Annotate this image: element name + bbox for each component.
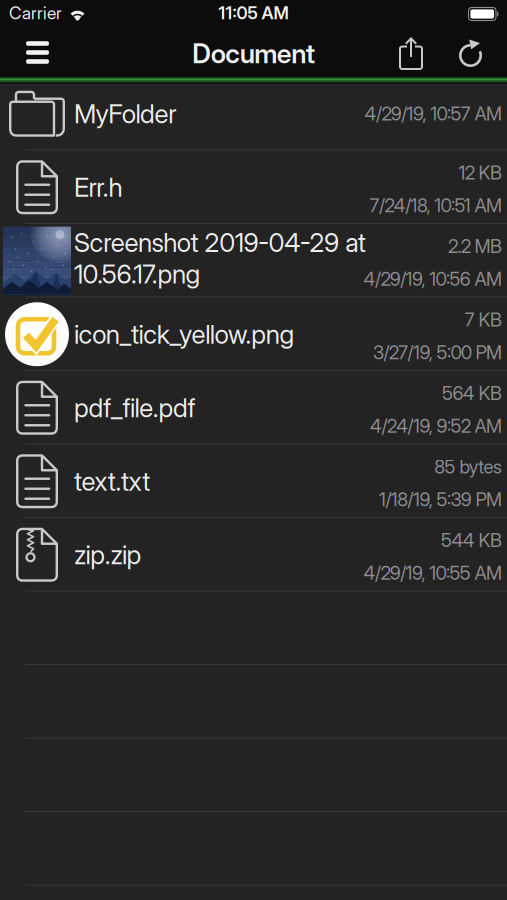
button[interactable]: text.txt: [0, 444, 507, 518]
staticText: 4/29/19, 10:57 AM: [365, 102, 502, 125]
button[interactable]: Screenshot 2019-04-29 at: [0, 224, 507, 297]
staticText: zip.zip: [74, 539, 142, 570]
button[interactable]: Menu: [0, 43, 49, 66]
staticText: 544 KB: [441, 529, 502, 552]
button[interactable]: zip.zip: [0, 518, 507, 591]
staticText: 12 KB: [458, 161, 502, 184]
staticText: Err.h: [74, 171, 122, 203]
staticText: icon_tick_yellow.png: [74, 318, 294, 350]
staticText: 4/24/19, 9:52 AM: [370, 415, 502, 437]
staticText: MyFolder: [74, 98, 176, 129]
staticText: 85 bytes: [434, 455, 502, 478]
staticText: 3/27/19, 5:00 PM: [373, 341, 502, 364]
staticText: Document: [192, 37, 315, 70]
button[interactable]: icon_tick_yellow.png: [0, 297, 507, 371]
staticText: Screenshot 2019-04-29 at: [74, 227, 366, 258]
staticText: 1/18/19, 5:39 PM: [379, 488, 502, 511]
staticText: 4/29/19, 10:55 AM: [364, 562, 502, 584]
button[interactable]: Err.h: [0, 150, 507, 224]
button[interactable]: Share: [399, 38, 423, 71]
staticText: pdf_file.pdf: [74, 392, 196, 423]
staticText: 564 KB: [442, 382, 502, 405]
button[interactable]: pdf_file.pdf: [0, 371, 507, 444]
staticText: 2.2 MB: [448, 235, 502, 258]
staticText: 7/24/18, 10:51 AM: [370, 194, 502, 217]
staticText: Carrier: [9, 2, 62, 23]
staticText: 4/29/19, 10:56 AM: [364, 268, 502, 290]
staticText: 7 KB: [465, 308, 502, 331]
staticText: 10.56.17.png: [74, 258, 201, 290]
staticText: 11:05 AM: [218, 2, 288, 23]
button[interactable]: MyFolder: [0, 77, 507, 150]
button[interactable]: Refresh: [459, 38, 483, 70]
staticText: text.txt: [74, 465, 150, 497]
